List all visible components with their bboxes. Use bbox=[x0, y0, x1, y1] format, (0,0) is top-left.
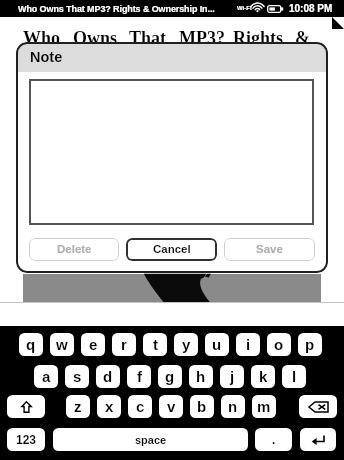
button[interactable]: z bbox=[66, 395, 90, 418]
staticText: m bbox=[257, 398, 271, 415]
other: Wi-Fi signal bbox=[253, 4, 262, 13]
button[interactable]: y bbox=[174, 333, 198, 356]
button[interactable]: d bbox=[96, 365, 120, 388]
button[interactable]: Cancel bbox=[126, 238, 217, 261]
staticText: b bbox=[197, 398, 207, 415]
staticText: f bbox=[137, 368, 142, 385]
staticText: n bbox=[228, 398, 238, 415]
staticText: Owns bbox=[73, 28, 118, 48]
button[interactable]: Delete bbox=[29, 238, 119, 261]
staticText: s bbox=[73, 368, 82, 385]
button[interactable]: u bbox=[205, 333, 229, 356]
button[interactable]: h bbox=[189, 365, 213, 388]
button[interactable]: i bbox=[236, 333, 260, 356]
staticText: k bbox=[259, 368, 268, 385]
button[interactable]: a bbox=[34, 365, 58, 388]
button[interactable]: v bbox=[159, 395, 183, 418]
staticText: r bbox=[121, 336, 127, 353]
button[interactable]: Save bbox=[224, 238, 315, 261]
staticText: e bbox=[89, 336, 98, 353]
staticText: z bbox=[74, 398, 82, 415]
staticText: Save bbox=[256, 243, 283, 256]
button[interactable]: f bbox=[127, 365, 151, 388]
staticText: q bbox=[26, 336, 36, 353]
button[interactable]: . bbox=[255, 428, 292, 451]
staticText: . bbox=[272, 433, 276, 446]
button[interactable]: q bbox=[19, 333, 43, 356]
staticText: g bbox=[165, 368, 175, 385]
staticText: a bbox=[42, 368, 51, 385]
button[interactable]: o bbox=[267, 333, 291, 356]
staticText: MP3? bbox=[179, 28, 225, 48]
button[interactable]: m bbox=[252, 395, 276, 418]
other: Battery bbox=[267, 5, 284, 13]
staticText: Who bbox=[23, 28, 61, 48]
staticText: That bbox=[129, 28, 167, 48]
staticText: c bbox=[136, 398, 145, 415]
button[interactable]: r bbox=[112, 333, 136, 356]
staticText: j bbox=[230, 368, 235, 385]
button[interactable]: x bbox=[97, 395, 121, 418]
staticText: Rights bbox=[233, 28, 284, 48]
staticText: y bbox=[182, 336, 191, 353]
staticText: t bbox=[153, 336, 158, 353]
staticText: l bbox=[292, 368, 297, 385]
button[interactable]: j bbox=[220, 365, 244, 388]
staticText: o bbox=[274, 336, 284, 353]
button[interactable]: k bbox=[251, 365, 275, 388]
staticText: Cancel bbox=[153, 243, 191, 256]
button[interactable]: p bbox=[298, 333, 322, 356]
button[interactable]: l bbox=[282, 365, 306, 388]
button[interactable]: t bbox=[143, 333, 167, 356]
button[interactable]: Backspace bbox=[299, 395, 337, 418]
staticText: h bbox=[196, 368, 206, 385]
staticText: Delete bbox=[57, 243, 92, 256]
staticText: Who Owns That MP3? Rights & Ownership In… bbox=[18, 4, 215, 14]
button[interactable]: b bbox=[190, 395, 214, 418]
staticText: 10:08 PM bbox=[289, 3, 333, 14]
button[interactable]: n bbox=[221, 395, 245, 418]
staticText: x bbox=[105, 398, 114, 415]
staticText: p bbox=[305, 336, 315, 353]
button[interactable] bbox=[29, 79, 314, 225]
button[interactable]: space bbox=[53, 428, 248, 451]
staticText: d bbox=[103, 368, 113, 385]
button[interactable]: w bbox=[50, 333, 74, 356]
staticText: Note bbox=[30, 49, 63, 65]
button[interactable]: Return bbox=[300, 428, 336, 451]
staticText: Wi-Fi bbox=[237, 5, 252, 12]
staticText: 123 bbox=[16, 433, 37, 446]
button[interactable]: 123 bbox=[7, 428, 45, 451]
button[interactable]: Shift bbox=[7, 395, 45, 418]
staticText: & bbox=[295, 28, 310, 48]
staticText: u bbox=[212, 336, 222, 353]
staticText: w bbox=[56, 336, 68, 353]
button[interactable]: c bbox=[128, 395, 152, 418]
staticText: space bbox=[135, 434, 167, 446]
staticText: i bbox=[246, 336, 251, 353]
button[interactable]: s bbox=[65, 365, 89, 388]
button[interactable]: e bbox=[81, 333, 105, 356]
staticText: v bbox=[167, 398, 176, 415]
button[interactable]: g bbox=[158, 365, 182, 388]
